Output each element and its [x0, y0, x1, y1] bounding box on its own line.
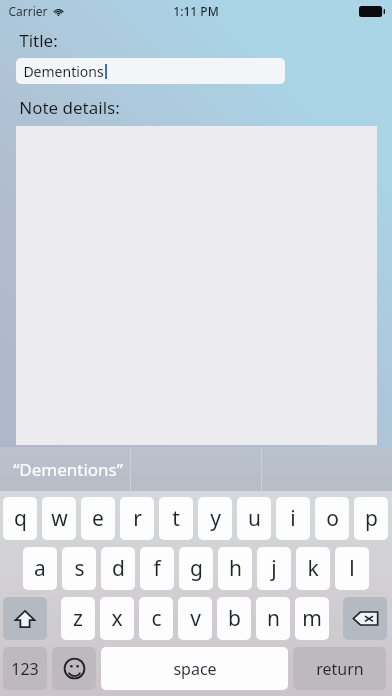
- staticText: o: [326, 504, 339, 533]
- staticText: s: [74, 554, 85, 583]
- staticText: p: [365, 504, 378, 533]
- staticText: r: [133, 504, 142, 533]
- staticText: m: [302, 604, 322, 633]
- button[interactable]: u: [237, 497, 271, 540]
- button[interactable]: f: [140, 547, 174, 590]
- button[interactable]: j: [257, 547, 291, 590]
- button[interactable]: space: [101, 647, 288, 690]
- staticText: f: [153, 554, 161, 583]
- staticText: return: [316, 658, 364, 680]
- staticText: a: [34, 554, 46, 583]
- button[interactable]: return: [293, 647, 386, 690]
- button[interactable]: a: [23, 547, 57, 590]
- button[interactable]: 123: [3, 647, 47, 690]
- staticText: l: [349, 554, 355, 583]
- button[interactable]: Shift: [3, 597, 47, 640]
- button[interactable]: l: [335, 547, 369, 590]
- staticText: h: [229, 554, 242, 583]
- button[interactable]: z: [61, 597, 95, 640]
- staticText: g: [190, 554, 203, 583]
- button[interactable]: e: [81, 497, 115, 540]
- button[interactable]: d: [101, 547, 135, 590]
- staticText: i: [290, 504, 296, 533]
- button[interactable]: x: [100, 597, 134, 640]
- staticText: z: [73, 604, 83, 633]
- staticText: t: [172, 504, 180, 533]
- staticText: “Dementions”: [13, 458, 123, 481]
- staticText: w: [51, 504, 68, 533]
- button[interactable]: Backspace: [343, 597, 387, 640]
- staticText: Dementions: [23, 62, 104, 81]
- button[interactable]: y: [198, 497, 232, 540]
- button[interactable]: r: [120, 497, 154, 540]
- staticText: u: [248, 504, 261, 533]
- staticText: c: [151, 604, 162, 633]
- button[interactable]: Dementions: [16, 58, 285, 84]
- staticText: Carrier: [8, 3, 48, 19]
- staticText: v: [190, 604, 201, 633]
- staticText: e: [92, 504, 104, 533]
- button[interactable]: o: [315, 497, 349, 540]
- staticText: j: [271, 554, 277, 583]
- staticText: Note details:: [19, 96, 120, 119]
- staticText: q: [14, 504, 27, 533]
- button[interactable]: “Dementions”: [0, 447, 130, 491]
- button[interactable]: b: [217, 597, 251, 640]
- button[interactable]: t: [159, 497, 193, 540]
- staticText: b: [228, 604, 241, 633]
- staticText: 1:11 PM: [173, 3, 219, 19]
- button[interactable]: g: [179, 547, 213, 590]
- staticText: 123: [11, 658, 39, 680]
- staticText: Title:: [19, 29, 58, 52]
- button[interactable]: w: [42, 497, 76, 540]
- staticText: space: [173, 658, 217, 680]
- button[interactable]: v: [178, 597, 212, 640]
- button[interactable]: q: [3, 497, 37, 540]
- staticText: y: [210, 504, 221, 533]
- button[interactable]: p: [354, 497, 388, 540]
- button[interactable]: n: [256, 597, 290, 640]
- button[interactable]: k: [296, 547, 330, 590]
- staticText: d: [112, 554, 125, 583]
- button[interactable]: s: [62, 547, 96, 590]
- button[interactable]: c: [139, 597, 173, 640]
- button[interactable]: h: [218, 547, 252, 590]
- staticText: k: [307, 554, 319, 583]
- staticText: n: [267, 604, 280, 633]
- button[interactable]: Emoji: [52, 647, 96, 690]
- staticText: x: [111, 604, 123, 633]
- button[interactable]: m: [295, 597, 329, 640]
- button[interactable]: i: [276, 497, 310, 540]
